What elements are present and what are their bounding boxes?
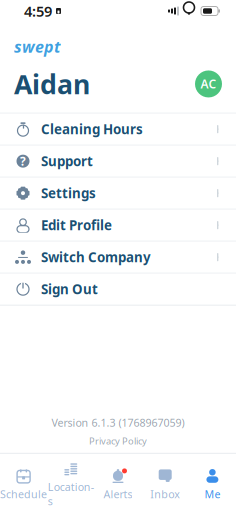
staticText: ? xyxy=(20,153,26,169)
button[interactable]: Me xyxy=(189,461,236,509)
staticText: Aidan xyxy=(14,66,90,102)
button[interactable]: Locations xyxy=(47,454,94,511)
staticText: Cleaning Hours xyxy=(41,120,143,138)
staticText: Sign Out xyxy=(41,280,98,298)
staticText: Me xyxy=(204,487,220,501)
staticText: Settings xyxy=(41,184,96,202)
staticText: AC xyxy=(200,76,216,92)
button[interactable]: Switch Company xyxy=(0,242,236,274)
staticText: 4:59 xyxy=(24,1,52,21)
button[interactable]: Sign Out xyxy=(0,274,236,306)
staticText: Inbox xyxy=(150,487,180,501)
button[interactable]: ? xyxy=(0,146,236,178)
staticText: Schedule xyxy=(0,487,47,501)
staticText: swept xyxy=(14,36,61,57)
button[interactable]: Schedule xyxy=(0,461,47,509)
button[interactable]: Account avatar xyxy=(195,70,222,97)
button[interactable]: Privacy Policy xyxy=(83,433,153,449)
button[interactable]: Inbox xyxy=(142,461,189,509)
staticText: Version 6.1.3 (1768967059) xyxy=(51,415,184,430)
button[interactable]: Edit Profile xyxy=(0,210,236,242)
staticText: Privacy Policy xyxy=(89,435,147,447)
button[interactable]: Settings xyxy=(0,178,236,210)
staticText: Support xyxy=(41,152,93,170)
button[interactable]: Alerts xyxy=(94,461,142,509)
staticText: Switch Company xyxy=(41,248,151,266)
staticText: Alerts xyxy=(103,487,132,501)
staticText: Edit Profile xyxy=(41,216,112,234)
button[interactable]: Cleaning Hours xyxy=(0,114,236,146)
staticText: Locations xyxy=(48,480,94,508)
